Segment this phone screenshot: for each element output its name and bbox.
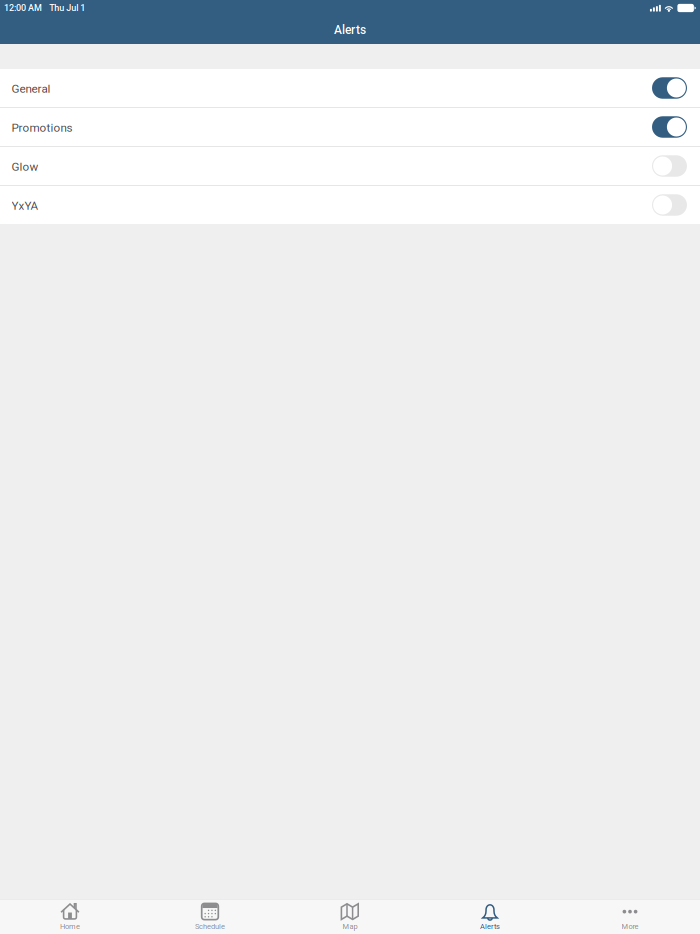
- staticText: Promotions: [11, 121, 72, 135]
- button[interactable]: Schedule: [140, 899, 280, 934]
- staticText: More: [621, 922, 638, 931]
- button[interactable]: Promotions: [0, 108, 700, 146]
- button[interactable]: Home: [0, 899, 140, 934]
- staticText: Alerts: [334, 23, 366, 37]
- button[interactable]: Glow: [0, 147, 700, 185]
- button[interactable]: YxYA: [0, 186, 700, 224]
- staticText: Map: [342, 922, 357, 931]
- button[interactable]: General: [0, 69, 700, 107]
- staticText: Schedule: [195, 922, 225, 931]
- staticText: 12:00 AM: [4, 3, 42, 13]
- staticText: Alerts: [480, 922, 500, 931]
- staticText: Home: [60, 922, 80, 931]
- button[interactable]: Alerts: [420, 899, 560, 934]
- button[interactable]: Map: [280, 899, 420, 934]
- staticText: General: [11, 82, 50, 96]
- staticText: Thu Jul 1: [49, 3, 85, 13]
- button[interactable]: More: [560, 899, 700, 934]
- staticText: YxYA: [11, 199, 38, 213]
- staticText: Glow: [11, 160, 38, 174]
